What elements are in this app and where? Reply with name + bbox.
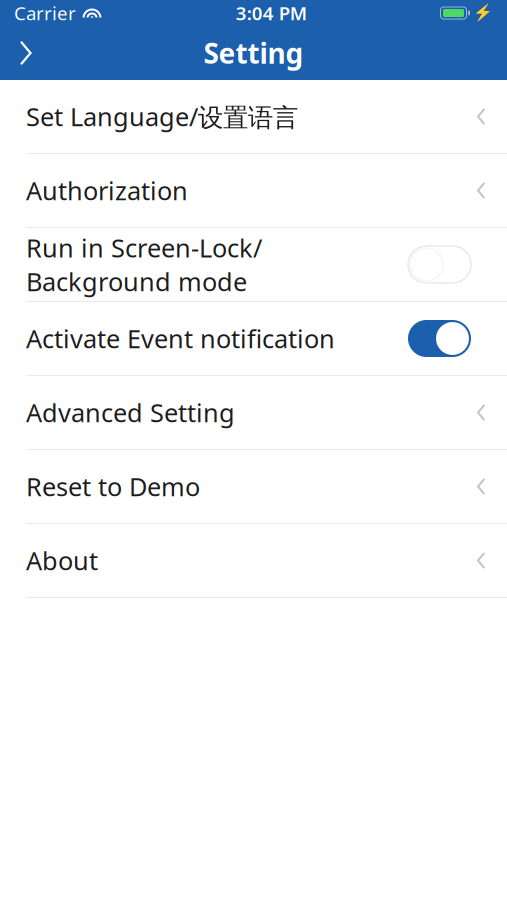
staticText: Authorization — [26, 174, 188, 207]
staticText: About — [26, 544, 98, 577]
staticText: ⚡ — [473, 4, 493, 22]
button[interactable]: About — [0, 524, 507, 597]
staticText: Reset to Demo — [26, 470, 200, 503]
staticText: Activate Event notification — [26, 322, 335, 355]
button[interactable]: Set Language/设置语言 — [0, 80, 507, 153]
staticText: Setting — [203, 34, 303, 72]
staticText: Carrier — [14, 1, 76, 25]
button[interactable]: Authorization — [0, 154, 507, 227]
button[interactable]: Reset to Demo — [0, 450, 507, 523]
staticText: Run in Screen-Lock/Background mode — [26, 231, 262, 298]
staticText: Advanced Setting — [26, 396, 235, 429]
button[interactable]: Back — [0, 26, 52, 80]
button[interactable]: Advanced Setting — [0, 376, 507, 449]
button[interactable]: Run in Screen-Lock/Background mode — [0, 228, 507, 301]
staticText: 3:04 PM — [236, 1, 307, 25]
staticText: Set Language/设置语言 — [26, 100, 298, 133]
button[interactable]: Activate Event notification — [0, 302, 507, 375]
